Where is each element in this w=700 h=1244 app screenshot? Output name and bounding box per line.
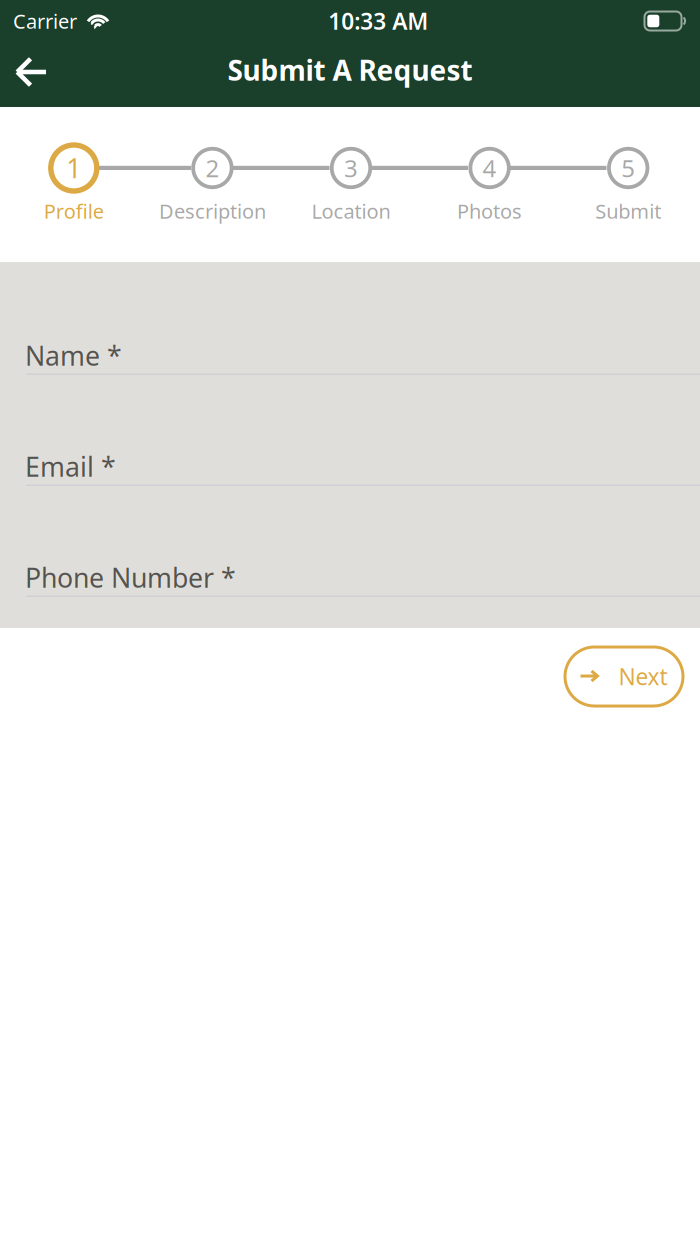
staticText: Location [311,198,390,224]
staticText: 5 [621,152,635,184]
button[interactable]: Name * [0,264,700,375]
staticText: 2 [205,152,219,184]
staticText: Description [159,198,266,224]
staticText: Phone Number * [25,560,236,595]
button[interactable]: Next [565,647,683,706]
staticText: 1 [66,150,81,186]
staticText: Email * [25,449,116,484]
button[interactable]: 2 [143,142,282,223]
button[interactable]: Back [0,40,90,104]
button[interactable]: 5 [559,142,697,223]
staticText: 10:33 AM [328,6,428,36]
staticText: Profile [44,198,104,224]
button[interactable]: 4 [420,142,559,223]
staticText: 4 [483,152,497,184]
staticText: Next [618,661,667,691]
button[interactable]: Email * [0,375,700,486]
staticText: 3 [344,152,358,184]
staticText: Name * [25,338,122,373]
button[interactable]: Phone Number * [0,486,700,597]
staticText: Submit A Request [227,51,472,89]
button[interactable]: 1 [4,142,143,223]
staticText: Photos [457,198,522,224]
button[interactable]: 3 [282,142,420,223]
staticText: Carrier [13,8,77,34]
staticText: Submit [595,198,661,224]
